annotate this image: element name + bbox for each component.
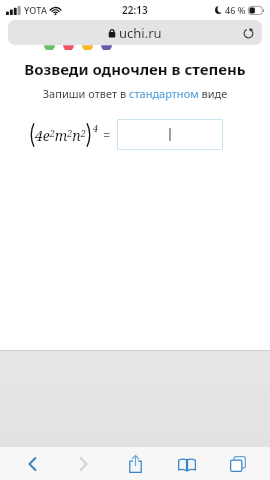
staticText: 4 [93, 122, 99, 134]
staticText: 46 % [225, 4, 246, 16]
staticText: 22:13 [122, 3, 148, 17]
button[interactable]: Answer field [117, 119, 223, 150]
button[interactable]: Tabs [218, 449, 258, 479]
staticText: Возведи одночлен в степень [6, 59, 264, 79]
button[interactable]: Forward [63, 449, 103, 479]
button[interactable]: uchi.ru [8, 20, 262, 45]
staticText: 4e2m2n2 [35, 126, 86, 145]
button[interactable]: Share [115, 449, 155, 479]
button[interactable]: Reload [238, 23, 258, 43]
staticText: YOTA [24, 4, 47, 16]
button[interactable]: Bookmarks [167, 449, 207, 479]
staticText: Запиши ответ в стандартном виде [0, 86, 270, 101]
staticText: = [103, 126, 111, 144]
staticText: uchi.ru [119, 24, 162, 42]
button[interactable]: Back [12, 449, 52, 479]
